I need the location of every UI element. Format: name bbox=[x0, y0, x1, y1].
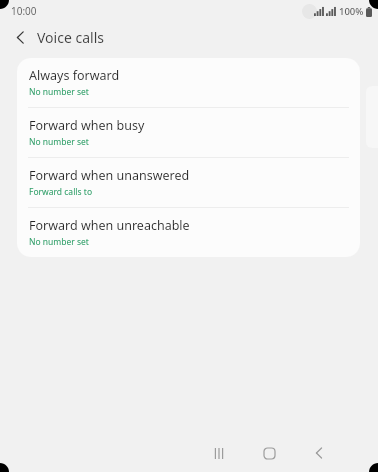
staticText: No number set bbox=[29, 236, 89, 248]
button[interactable]: Forward when busy bbox=[17, 108, 360, 157]
button[interactable]: Home bbox=[252, 436, 286, 470]
staticText: Forward when unanswered bbox=[29, 167, 190, 184]
button[interactable]: Always forward bbox=[17, 58, 360, 107]
staticText: No number set bbox=[29, 86, 89, 98]
button[interactable]: Back bbox=[302, 436, 336, 470]
staticText: 10:00 bbox=[11, 4, 37, 18]
button[interactable]: Forward when unanswered bbox=[17, 158, 360, 207]
staticText: 100% bbox=[339, 5, 364, 18]
button[interactable]: Forward when unreachable bbox=[17, 208, 360, 257]
staticText: Forward when busy bbox=[29, 117, 145, 134]
staticText: Always forward bbox=[29, 67, 120, 84]
button[interactable]: Recent apps bbox=[202, 436, 236, 470]
staticText: Voice calls bbox=[37, 28, 104, 47]
staticText: Forward when unreachable bbox=[29, 217, 190, 234]
staticText: Forward calls to bbox=[29, 186, 93, 198]
button[interactable]: Navigate up bbox=[6, 23, 34, 51]
staticText: No number set bbox=[29, 136, 89, 148]
